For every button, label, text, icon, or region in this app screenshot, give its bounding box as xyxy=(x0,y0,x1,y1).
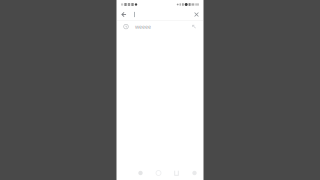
button[interactable]: Bookmarks xyxy=(167,166,185,180)
button[interactable]: Back xyxy=(119,9,129,20)
button[interactable]: Clear search xyxy=(191,9,201,20)
staticText: weeee xyxy=(135,23,151,30)
button[interactable]: Discover xyxy=(149,166,167,180)
button[interactable]: More xyxy=(185,166,203,180)
button[interactable]: weeee xyxy=(117,21,203,33)
button[interactable]: Home xyxy=(131,166,149,180)
